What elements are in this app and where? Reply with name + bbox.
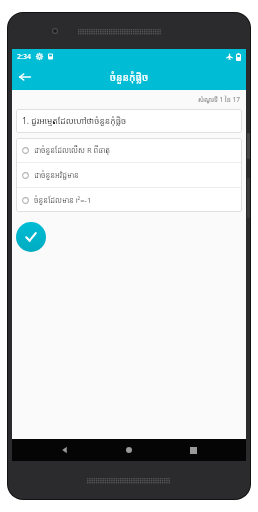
button[interactable]: ជាចំនួនអវិជ្ជមាន (16, 163, 242, 187)
staticText: ចំនួនកុំផ្លិច (12, 70, 246, 84)
button[interactable]: Back (54, 439, 76, 461)
staticText: ជាចំនួនអវិជ្ជមាន (34, 170, 79, 180)
button[interactable]: ជាចំនួនដែលលើស R ពីធាតុ (16, 138, 242, 162)
button[interactable]: Back (14, 66, 36, 88)
staticText: ចំនួនដែលមាន i²=-1 (34, 195, 92, 205)
staticText: ជាចំនួនដែលលើស R ពីធាតុ (34, 145, 111, 155)
button[interactable]: Recent apps (182, 439, 204, 461)
button[interactable]: ចំនួនដែលមាន i²=-1 (16, 188, 242, 212)
staticText: សំណួរទី 1 នៃ 17 (16, 95, 240, 104)
button[interactable]: Submit answer (16, 222, 46, 252)
button[interactable]: 1. ជួរអម្មេតដែលហៅថាចំនួនកុំផ្លិច (16, 109, 242, 133)
staticText: 2:34 (17, 52, 31, 62)
staticText: 1. ជួរអម្មេតដែលហៅថាចំនួនកុំផ្លិច (22, 115, 127, 127)
button[interactable]: Home (118, 439, 140, 461)
